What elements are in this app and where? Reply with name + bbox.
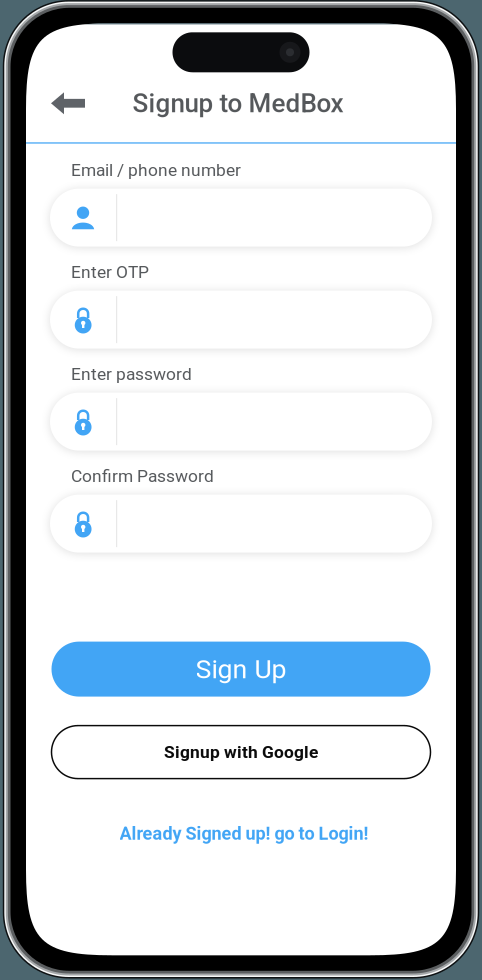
button[interactable] [50,291,432,349]
staticText: Enter password [71,364,192,384]
button[interactable]: Sign Up [51,642,430,697]
button[interactable]: Already Signed up! go to Login! [51,822,431,846]
button[interactable] [50,189,432,247]
staticText: Already Signed up! go to Login! [119,823,368,844]
staticText: Signup to MedBox [132,88,343,119]
button[interactable]: Signup with Google [51,726,430,779]
staticText: Sign Up [195,653,286,685]
button[interactable] [50,495,432,553]
button[interactable] [50,393,432,451]
staticText: Email / phone number [71,160,241,180]
staticText: Enter OTP [71,262,149,282]
button[interactable]: Back [26,81,99,125]
staticText: Confirm Password [71,466,214,486]
staticText: Signup with Google [164,742,318,762]
